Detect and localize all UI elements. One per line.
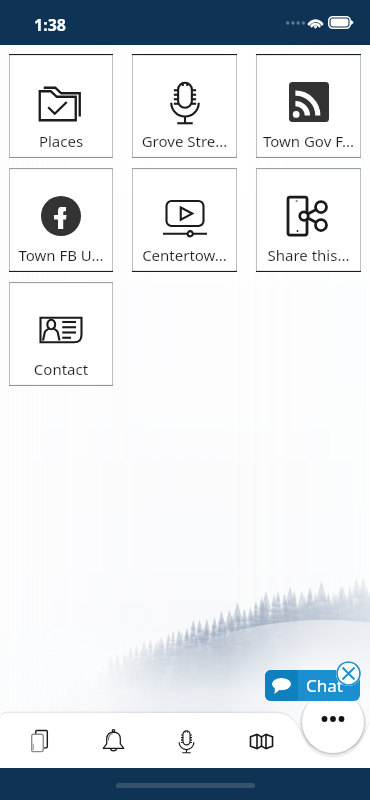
button[interactable]: Town Gov F... [256,54,361,158]
staticText: Chat [306,674,343,697]
button[interactable]: Notifications [87,713,139,768]
button[interactable]: More options [302,691,364,753]
button[interactable]: Voice search [160,713,212,768]
staticText: Grove Stre... [133,131,236,151]
staticText: Share this... [257,245,360,265]
staticText: 1:38 [34,14,66,36]
button[interactable]: Map [235,713,287,768]
button[interactable]: Share this... [256,168,361,272]
staticText: Town Gov F... [257,131,360,151]
staticText: Places [10,131,112,151]
staticText: Contact [10,359,112,379]
staticText: Town FB U... [10,245,112,265]
button[interactable]: Close chat [336,661,361,686]
button[interactable]: Chat [265,670,360,701]
staticText: Centertow... [133,245,236,265]
button[interactable]: Contact [9,282,113,386]
button[interactable]: Town FB U... [9,168,113,272]
button[interactable]: Pages [13,713,65,768]
button[interactable]: Grove Stre... [132,54,237,158]
button[interactable]: Places [9,54,113,158]
button[interactable]: Centertow... [132,168,237,272]
